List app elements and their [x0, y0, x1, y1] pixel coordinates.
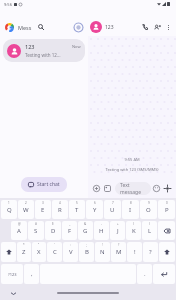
staticText: Z	[22, 248, 26, 256]
button[interactable]: F	[62, 221, 77, 240]
button[interactable]: R	[52, 200, 68, 219]
button[interactable]: Gallery	[102, 183, 113, 194]
staticText: Now	[72, 44, 81, 49]
staticText: O	[146, 206, 151, 214]
staticText: D	[51, 227, 56, 235]
staticText: Q	[7, 206, 12, 214]
staticText: B	[85, 248, 89, 256]
button[interactable]: W	[18, 200, 34, 219]
staticText: *	[23, 243, 25, 247]
staticText: 123	[25, 43, 35, 50]
button[interactable]: A	[11, 221, 27, 240]
staticText: U	[110, 206, 115, 214]
staticText: 0	[166, 201, 168, 205]
staticText: Texting with 12…	[25, 52, 61, 58]
staticText: .	[144, 270, 146, 278]
staticText: Y	[93, 206, 97, 214]
button[interactable]: Add people	[151, 21, 163, 33]
staticText: ;	[86, 243, 87, 247]
button[interactable]: I	[122, 200, 139, 219]
button[interactable]: ?	[143, 242, 158, 262]
button[interactable]: Search	[36, 22, 46, 32]
button[interactable]: More options	[163, 22, 173, 32]
staticText: V	[69, 248, 73, 256]
staticText: Mess	[18, 24, 32, 31]
button[interactable]: N	[95, 242, 110, 262]
button[interactable]: ?123	[1, 264, 23, 284]
button[interactable]: .	[137, 264, 152, 284]
button[interactable]: K	[126, 221, 141, 240]
button[interactable]: Z	[17, 242, 31, 262]
button[interactable]: Q	[1, 200, 17, 219]
staticText: T	[75, 206, 79, 214]
staticText: F	[68, 227, 72, 235]
button[interactable]: L	[142, 221, 157, 240]
staticText: 9:56	[4, 2, 12, 7]
button[interactable]: ,	[24, 264, 39, 284]
staticText: )	[149, 222, 150, 226]
button[interactable]: U	[104, 200, 121, 219]
button[interactable]: O	[140, 200, 157, 219]
staticText: 5	[76, 201, 78, 205]
staticText: '	[54, 243, 55, 247]
staticText: 8	[130, 201, 132, 205]
staticText: E	[41, 206, 45, 214]
button[interactable]: B	[79, 242, 94, 262]
staticText: "	[38, 243, 40, 247]
staticText: !	[102, 243, 103, 247]
staticText: Text message	[120, 182, 146, 195]
staticText: 6	[94, 201, 96, 205]
staticText: 9	[148, 201, 150, 205]
staticText: 2	[25, 201, 27, 205]
staticText: L	[148, 227, 152, 235]
button[interactable]: P	[158, 200, 175, 219]
staticText: Start chat	[37, 181, 60, 188]
button[interactable]: J	[110, 221, 125, 240]
staticText: K	[132, 227, 136, 235]
button[interactable]: M	[111, 242, 126, 262]
staticText: S	[34, 227, 38, 235]
button[interactable]: Account	[73, 22, 84, 33]
staticText: &	[84, 222, 87, 226]
button[interactable]: 123	[3, 39, 85, 62]
button[interactable]: Enter	[153, 264, 175, 284]
staticText: 123	[105, 24, 114, 31]
button[interactable]: Call	[139, 21, 151, 33]
button[interactable]: G	[78, 221, 93, 240]
staticText: P	[165, 206, 169, 214]
staticText: 3	[42, 201, 44, 205]
button[interactable]: Shift	[159, 242, 175, 262]
button[interactable]: Send	[162, 183, 173, 194]
staticText: ,	[31, 270, 33, 278]
staticText: R	[58, 206, 62, 214]
button[interactable]: Emoji	[151, 183, 162, 194]
button[interactable]: Y	[86, 200, 103, 219]
button[interactable]: Backspace	[158, 221, 175, 240]
button[interactable]: X	[32, 242, 46, 262]
button[interactable]: Text message	[115, 182, 151, 195]
button[interactable]: Add	[91, 183, 102, 194]
button[interactable]: V	[63, 242, 78, 262]
staticText: Texting with 123 (SMS/MMS)	[105, 167, 159, 172]
staticText: !	[134, 248, 136, 256]
button[interactable]: D	[45, 221, 61, 240]
staticText: 7	[112, 201, 114, 205]
staticText: @	[18, 222, 21, 226]
button[interactable]: S	[28, 221, 44, 240]
button[interactable]: Shift	[1, 242, 16, 262]
button[interactable]: Hide keyboard	[9, 289, 17, 297]
button[interactable]: Start chat	[21, 177, 67, 192]
staticText: J	[117, 227, 119, 235]
button[interactable]: E	[35, 200, 51, 219]
staticText: -	[101, 222, 102, 226]
button[interactable]: C	[47, 242, 62, 262]
staticText: 4	[59, 201, 61, 205]
staticText: C	[53, 248, 57, 256]
staticText: X	[37, 248, 41, 256]
staticText: ?	[149, 248, 152, 256]
button[interactable]: H	[94, 221, 109, 240]
staticText: :	[70, 243, 71, 247]
button[interactable]: !	[127, 242, 142, 262]
button[interactable]: T	[69, 200, 85, 219]
